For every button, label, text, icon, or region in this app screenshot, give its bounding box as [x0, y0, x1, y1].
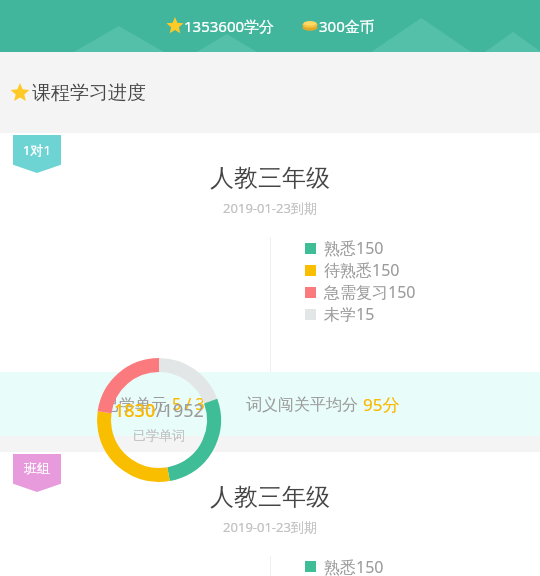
staticText: 未学15 [324, 303, 375, 325]
button[interactable]: 金币 [297, 16, 379, 36]
staticText: 人教三年级 [0, 482, 540, 512]
staticText: 班组 [13, 460, 61, 476]
staticText: 2019-01-23到期 [0, 518, 540, 536]
staticText: 已学单元 [103, 393, 172, 415]
staticText: 1830 [114, 398, 156, 423]
button[interactable]: 熟悉150 [305, 556, 384, 576]
staticText: 300金币 [319, 16, 375, 36]
staticText: 熟悉150 [324, 556, 384, 576]
staticText: /1952 [156, 398, 204, 423]
staticText: 2019-01-23到期 [0, 199, 540, 217]
staticText: 已学单词 [133, 427, 185, 443]
staticText: 待熟悉150 [324, 259, 400, 281]
staticText: 熟悉150 [324, 237, 384, 259]
button[interactable]: 熟悉150 [305, 237, 384, 259]
staticText: 5 / 30 [172, 393, 214, 415]
staticText: 急需复习150 [324, 281, 416, 303]
other: 学分 [166, 17, 184, 35]
button[interactable]: 人教三年级 [0, 452, 540, 576]
staticText: 1353600学分 [184, 16, 275, 36]
staticText: 人教三年级 [0, 163, 540, 193]
button[interactable]: 待熟悉150 [305, 259, 400, 281]
staticText: 95分 [363, 393, 400, 416]
staticText: 课程学习进度 [32, 81, 146, 105]
staticText: 词义闯关平均分 [246, 393, 363, 415]
button[interactable]: 学分 [162, 16, 279, 36]
other: 金币 [301, 17, 319, 35]
button[interactable]: 急需复习150 [305, 281, 416, 303]
staticText: 1对1 [13, 141, 61, 159]
button[interactable]: 人教三年级 [0, 133, 540, 436]
button[interactable]: 未学15 [305, 303, 375, 325]
